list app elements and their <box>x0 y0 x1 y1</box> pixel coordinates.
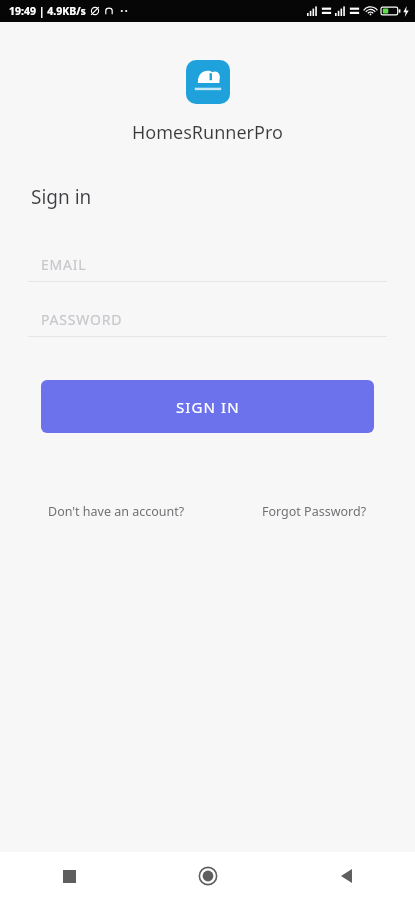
button[interactable]: Back <box>277 852 415 900</box>
staticText: EMAIL <box>41 255 87 274</box>
button[interactable]: PASSWORD <box>28 302 387 337</box>
staticText: Sign in <box>31 184 92 210</box>
staticText: Forgot Password? <box>262 503 367 520</box>
button[interactable]: Forgot Password? <box>262 499 367 524</box>
button[interactable]: SIGN IN <box>41 380 374 433</box>
button[interactable]: EMAIL <box>28 247 387 282</box>
staticText: SIGN IN <box>176 397 240 417</box>
button[interactable]: Don't have an account? <box>48 499 185 524</box>
button[interactable]: Recents <box>0 852 139 900</box>
button[interactable]: Home <box>139 852 277 900</box>
staticText: HomesRunnerPro <box>132 120 283 145</box>
staticText: Don't have an account? <box>48 503 185 520</box>
other: HomesRunnerPro logo <box>186 60 230 104</box>
staticText: PASSWORD <box>41 310 123 329</box>
staticText: 19:49 | 4.9KB/s <box>9 4 86 18</box>
